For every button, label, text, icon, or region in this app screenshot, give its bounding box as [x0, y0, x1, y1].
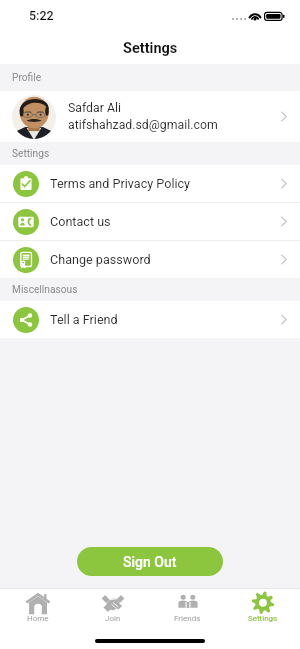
- staticText: Tell a Friend: [50, 312, 118, 327]
- button[interactable]: Change password: [0, 241, 300, 278]
- staticText: Friends: [174, 614, 201, 623]
- button[interactable]: Sign Out: [77, 547, 223, 576]
- staticText: Join: [105, 614, 121, 623]
- staticText: Home: [27, 614, 49, 623]
- staticText: Profile: [12, 72, 42, 84]
- button[interactable]: Join: [75, 589, 150, 624]
- button[interactable]: Tell a Friend: [0, 301, 300, 338]
- staticText: Settings: [12, 148, 50, 160]
- staticText: Terms and Privacy Policy: [50, 176, 191, 191]
- staticText: Change password: [50, 252, 151, 267]
- other: Friends: [176, 592, 200, 615]
- staticText: Settings: [123, 40, 178, 57]
- staticText: Miscellnasous: [12, 284, 78, 296]
- staticText: 5:22: [29, 8, 54, 23]
- button[interactable]: Safdar Ali: [0, 91, 300, 142]
- staticText: atifshahzad.sd@gmail.com: [68, 118, 218, 132]
- button[interactable]: Terms and Privacy Policy: [0, 165, 300, 202]
- staticText: Safdar Ali: [68, 101, 121, 115]
- button[interactable]: Friends: [150, 589, 225, 624]
- staticText: Settings: [248, 614, 278, 623]
- staticText: Sign Out: [123, 554, 177, 570]
- other: Settings: [251, 592, 275, 615]
- button[interactable]: Contact us: [0, 203, 300, 240]
- button[interactable]: Home: [0, 589, 75, 624]
- staticText: Contact us: [50, 214, 111, 229]
- other: Home: [25, 592, 51, 615]
- button[interactable]: Settings: [225, 589, 300, 624]
- other: Join: [100, 592, 126, 615]
